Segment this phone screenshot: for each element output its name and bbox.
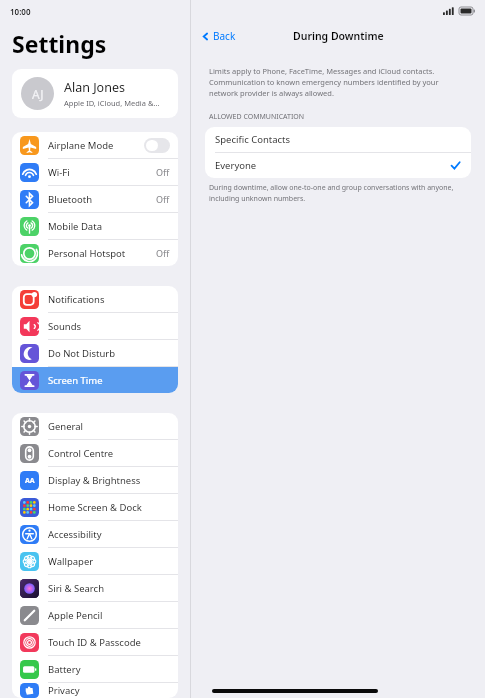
button[interactable]: Sounds bbox=[12, 313, 178, 339]
button[interactable]: Apple Pencil bbox=[12, 602, 178, 628]
button[interactable]: Wallpaper bbox=[12, 548, 178, 574]
staticText: Everyone bbox=[215, 159, 450, 172]
button[interactable]: Privacy bbox=[12, 683, 178, 698]
button[interactable]: Screen Time bbox=[12, 367, 178, 393]
staticText: Control Centre bbox=[48, 447, 170, 460]
button[interactable]: Everyone bbox=[205, 153, 471, 178]
staticText: During Downtime bbox=[293, 29, 384, 43]
staticText: Battery bbox=[48, 663, 170, 676]
button[interactable]: AJ bbox=[12, 69, 178, 118]
staticText: Screen Time bbox=[48, 374, 170, 387]
staticText: Off bbox=[156, 193, 170, 205]
staticText: Home Screen & Dock bbox=[48, 501, 170, 514]
staticText: Bluetooth bbox=[48, 193, 156, 206]
button[interactable]: Touch ID & Passcode bbox=[12, 629, 178, 655]
staticText: Accessibility bbox=[48, 528, 170, 541]
staticText: AJ bbox=[32, 86, 44, 102]
staticText: Sounds bbox=[48, 320, 170, 333]
button[interactable]: Battery bbox=[12, 656, 178, 682]
staticText: Specific Contacts bbox=[215, 133, 291, 146]
staticText: Wi-Fi bbox=[48, 166, 156, 179]
staticText: Back bbox=[213, 29, 236, 43]
staticText: AA bbox=[25, 476, 35, 486]
button[interactable]: Siri & Search bbox=[12, 575, 178, 601]
staticText: Settings bbox=[12, 28, 107, 59]
staticText: Personal Hotspot bbox=[48, 247, 156, 260]
button[interactable]: Mobile Data bbox=[12, 213, 178, 239]
staticText: Alan Jones bbox=[64, 79, 125, 96]
button[interactable]: Home Screen & Dock bbox=[12, 494, 178, 520]
staticText: Do Not Disturb bbox=[48, 347, 170, 360]
button[interactable]: General bbox=[12, 413, 178, 439]
staticText: Limits apply to Phone, FaceTime, Message… bbox=[209, 66, 467, 98]
button[interactable]: Airplane Mode bbox=[12, 132, 178, 158]
staticText: Off bbox=[156, 247, 170, 259]
button[interactable]: Bluetooth bbox=[12, 186, 178, 212]
staticText: Touch ID & Passcode bbox=[48, 636, 170, 649]
staticText: Apple Pencil bbox=[48, 609, 170, 622]
button[interactable]: Do Not Disturb bbox=[12, 340, 178, 366]
staticText: General bbox=[48, 420, 170, 433]
staticText: Wallpaper bbox=[48, 555, 170, 568]
button[interactable]: Specific Contacts bbox=[205, 127, 471, 152]
button[interactable]: Notifications bbox=[12, 286, 178, 312]
button[interactable]: Personal Hotspot bbox=[12, 240, 178, 266]
button[interactable]: Back bbox=[199, 27, 238, 45]
staticText: Airplane Mode bbox=[48, 139, 144, 152]
button[interactable]: Control Centre bbox=[12, 440, 178, 466]
staticText: Notifications bbox=[48, 293, 170, 306]
button[interactable]: Accessibility bbox=[12, 521, 178, 547]
staticText: Display & Brightness bbox=[48, 474, 170, 487]
staticText: Privacy bbox=[48, 684, 170, 697]
staticText: Apple ID, iCloud, Media &... bbox=[64, 98, 160, 108]
button[interactable]: Wi-Fi bbox=[12, 159, 178, 185]
staticText: During downtime, allow one-to-one and gr… bbox=[209, 183, 467, 203]
button[interactable]: AA bbox=[12, 467, 178, 493]
staticText: Siri & Search bbox=[48, 582, 170, 595]
staticText: Mobile Data bbox=[48, 220, 170, 233]
staticText: ALLOWED COMMUNICATION bbox=[209, 112, 305, 122]
staticText: Off bbox=[156, 166, 170, 178]
staticText: 10:00 bbox=[10, 6, 31, 17]
